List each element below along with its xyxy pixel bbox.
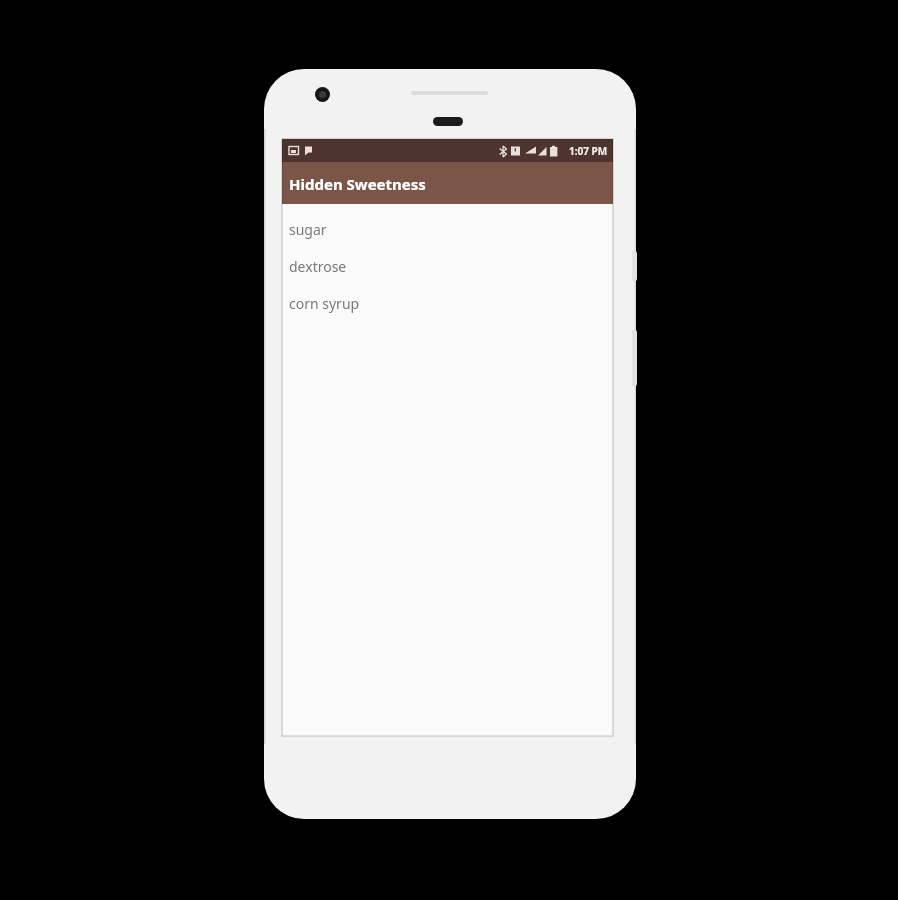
staticText: 1:07 PM — [569, 144, 608, 158]
staticText: sugar — [289, 220, 327, 239]
button[interactable]: corn syrup — [282, 285, 613, 322]
staticText: Hidden Sweetness — [289, 174, 426, 194]
staticText: corn syrup — [289, 294, 360, 313]
button[interactable]: dextrose — [282, 248, 613, 285]
staticText: dextrose — [289, 257, 347, 276]
button[interactable]: sugar — [282, 211, 613, 248]
